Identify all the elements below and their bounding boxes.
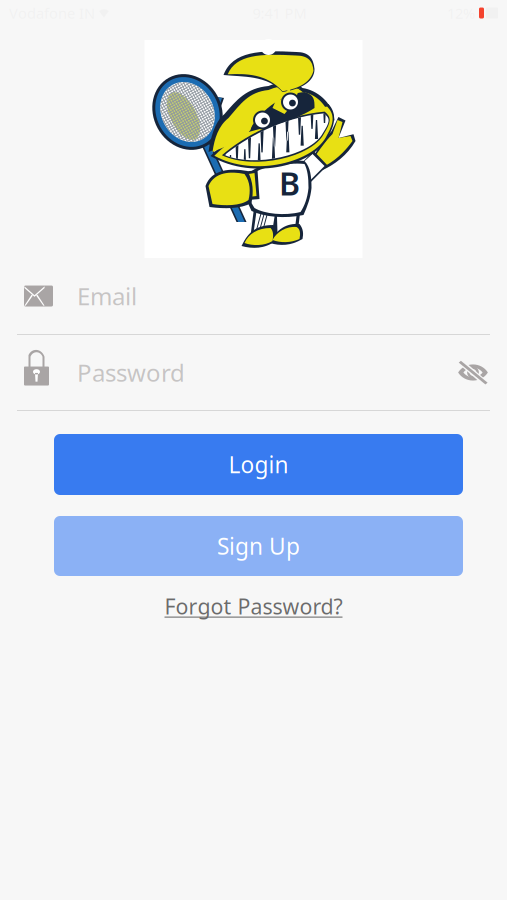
button[interactable]: Sign Up bbox=[54, 516, 463, 576]
button[interactable]: Forgot Password? bbox=[164, 576, 342, 620]
staticText: B bbox=[279, 162, 300, 204]
button[interactable]: Login bbox=[54, 434, 463, 495]
staticText: Email bbox=[77, 280, 137, 312]
staticText: Sign Up bbox=[217, 531, 300, 561]
staticText: Login bbox=[228, 449, 288, 479]
button[interactable]: Show password bbox=[451, 350, 495, 394]
staticText: Password bbox=[77, 357, 185, 388]
staticText: Forgot Password? bbox=[164, 592, 342, 620]
